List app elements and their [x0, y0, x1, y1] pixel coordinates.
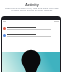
- staticText: Keep track of every run, ride and walk y…: [2, 6, 62, 12]
- button[interactable]: [2, 26, 60, 31]
- button[interactable]: [2, 33, 60, 38]
- staticText: Activity: [25, 2, 39, 7]
